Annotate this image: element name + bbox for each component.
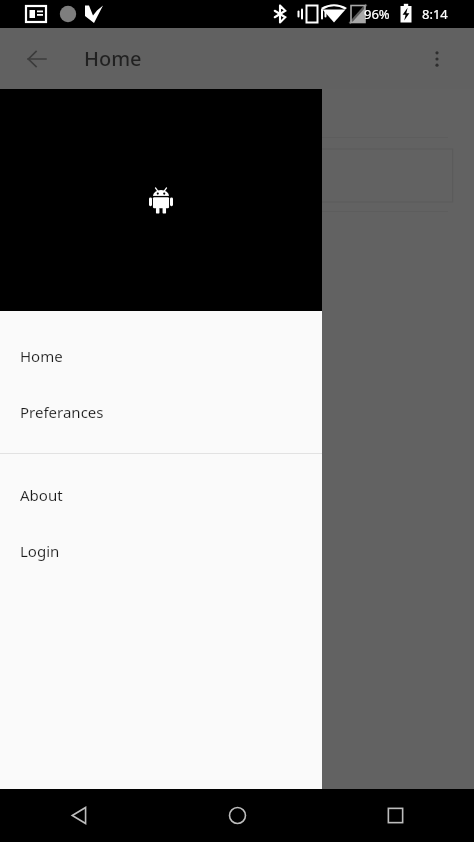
- staticText: 96%: [364, 5, 390, 23]
- button[interactable]: About: [0, 467, 322, 523]
- button[interactable]: Recent apps: [316, 789, 474, 842]
- staticText: Home: [84, 45, 142, 72]
- button[interactable]: Back: [0, 789, 158, 842]
- staticText: Preferances: [20, 402, 104, 422]
- button[interactable]: Back: [14, 36, 60, 82]
- staticText: 8:14: [422, 5, 448, 23]
- button[interactable]: Preferances: [0, 384, 322, 440]
- button[interactable]: Home: [0, 328, 322, 384]
- staticText: Login: [20, 541, 60, 561]
- button[interactable]: Login: [0, 523, 322, 579]
- staticText: About: [20, 485, 63, 505]
- staticText: Home: [20, 346, 63, 366]
- button[interactable]: Home: [158, 789, 316, 842]
- button[interactable]: More options: [414, 36, 460, 82]
